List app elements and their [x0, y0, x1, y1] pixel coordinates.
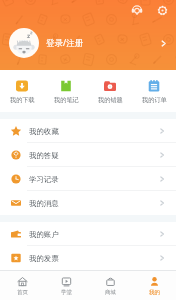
button[interactable]: 我的笔记 — [44, 70, 88, 112]
button[interactable]: Customer service — [129, 2, 145, 18]
staticText: 首页 — [17, 289, 28, 296]
staticText: 我的错题 — [98, 96, 123, 104]
staticText: 学堂 — [61, 289, 72, 296]
button[interactable]: 我的订单 — [132, 70, 176, 112]
button[interactable]: 我的答疑 — [0, 143, 176, 167]
staticText: 我的收藏 — [29, 127, 59, 136]
button[interactable]: 我的错题 — [88, 70, 132, 112]
button[interactable]: 我的下载 — [0, 70, 44, 112]
button[interactable]: 登录/注册 — [9, 27, 168, 59]
staticText: 学习记录 — [29, 175, 59, 184]
button[interactable]: 学堂 — [44, 271, 88, 300]
staticText: 登录/注册 — [46, 37, 84, 49]
button[interactable]: 我的 — [132, 271, 176, 300]
button[interactable]: 首页 — [0, 271, 44, 300]
button[interactable]: 我的消息 — [0, 191, 176, 215]
button[interactable]: 我的收藏 — [0, 119, 176, 143]
staticText: 我的答疑 — [29, 151, 59, 160]
staticText: 我的笔记 — [54, 96, 79, 104]
staticText: 我的下载 — [10, 96, 35, 104]
staticText: 我的 — [149, 289, 160, 296]
staticText: 我的发票 — [29, 254, 59, 263]
button[interactable]: 我的账户 — [0, 222, 176, 246]
staticText: 我的消息 — [29, 199, 59, 208]
button[interactable]: 学习记录 — [0, 167, 176, 191]
staticText: 商城 — [105, 289, 116, 296]
button[interactable]: Settings — [154, 2, 170, 18]
staticText: 我的订单 — [142, 96, 167, 104]
staticText: 我的账户 — [29, 230, 59, 239]
button[interactable]: 我的发票 — [0, 246, 176, 270]
button[interactable]: 商城 — [88, 271, 132, 300]
